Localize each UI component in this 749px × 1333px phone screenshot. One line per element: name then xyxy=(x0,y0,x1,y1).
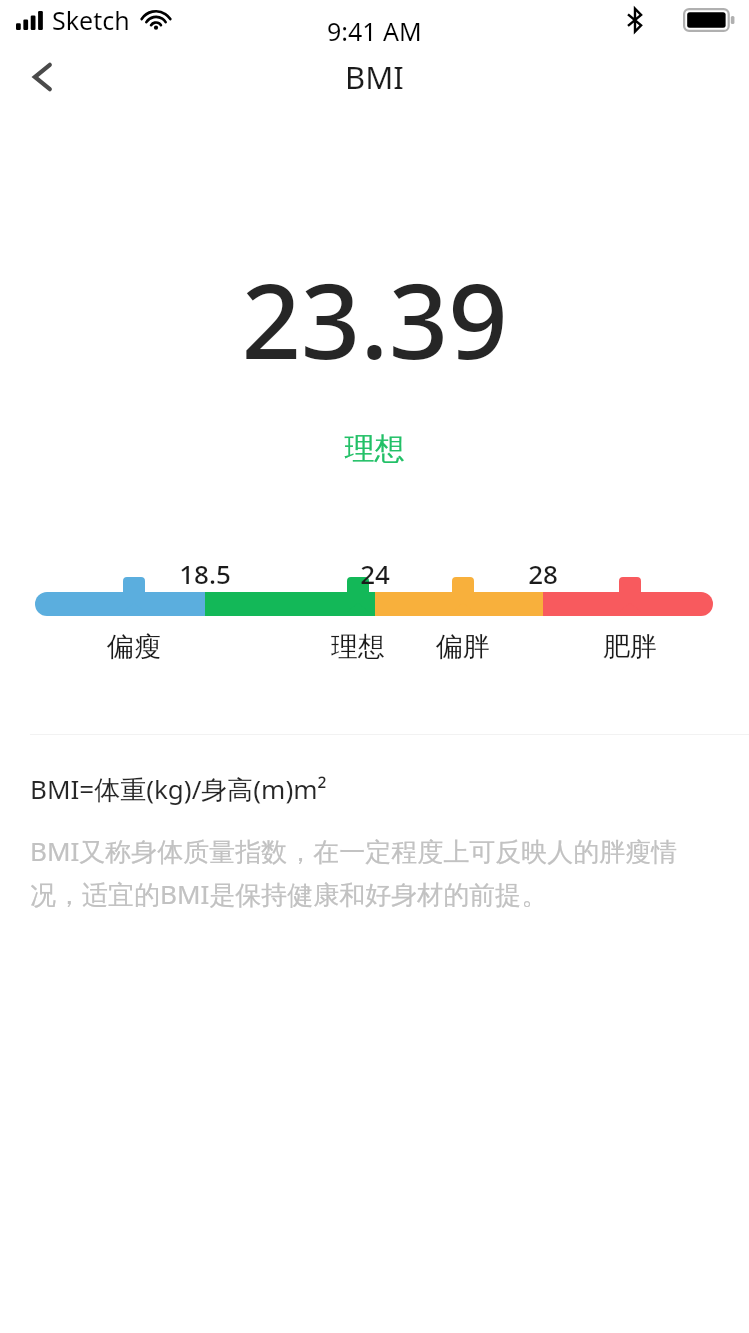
staticText: BMI=体重(kg)/身高(m)m² xyxy=(30,771,327,807)
button[interactable]: 偏瘦 xyxy=(74,626,194,668)
staticText: BMI xyxy=(345,56,404,98)
staticText: BMI又称身体质量指数，在一定程度上可反映人的胖瘦情况，适宜的BMI是保持健康和… xyxy=(30,833,721,912)
staticText: 24 xyxy=(360,556,390,590)
staticText: Sketch xyxy=(52,3,130,37)
staticText: 23.39 xyxy=(0,248,749,390)
staticText: 理想 xyxy=(0,430,749,468)
staticText: 肥胖 xyxy=(603,630,657,664)
staticText: 理想 xyxy=(331,630,385,664)
button[interactable]: 肥胖 xyxy=(570,626,690,668)
staticText: 9:41 AM xyxy=(327,14,422,48)
button[interactable]: 理想 xyxy=(298,626,418,668)
staticText: 28 xyxy=(528,556,558,590)
button[interactable]: Back xyxy=(12,46,74,108)
staticText: 偏瘦 xyxy=(107,630,161,664)
staticText: 18.5 xyxy=(179,556,231,590)
button[interactable]: 偏胖 xyxy=(403,626,523,668)
staticText: 偏胖 xyxy=(436,630,490,664)
